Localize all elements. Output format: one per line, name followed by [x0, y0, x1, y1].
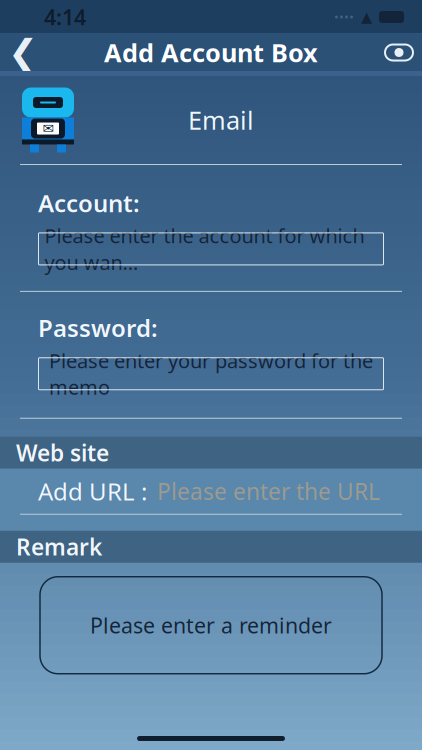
- staticText: Please enter your password for the memo: [49, 347, 373, 400]
- staticText: Web site: [16, 438, 109, 468]
- button[interactable]: Show password: [376, 32, 422, 72]
- staticText: Account:: [38, 187, 140, 219]
- staticText: Password:: [38, 312, 158, 344]
- button[interactable]: Back: [0, 32, 46, 72]
- staticText: ▲: [361, 9, 372, 25]
- button[interactable]: Please enter the account for which you w…: [38, 233, 383, 265]
- staticText: ✉: [42, 121, 53, 136]
- button[interactable]: Please enter your password for the memo: [38, 358, 383, 390]
- button[interactable]: Add URL :: [0, 469, 422, 531]
- staticText: Add Account Box: [104, 36, 318, 69]
- staticText: ❮: [8, 32, 38, 73]
- staticText: Remark: [16, 532, 102, 562]
- button[interactable]: Please enter a reminder: [40, 577, 382, 674]
- staticText: Email: [188, 103, 254, 137]
- staticText: Add URL :: [38, 475, 147, 507]
- staticText: 4:14: [44, 3, 86, 31]
- staticText: Please enter the account for which you w…: [44, 222, 364, 275]
- staticText: Please enter a reminder: [90, 611, 332, 639]
- staticText: Please enter the URL: [157, 476, 380, 506]
